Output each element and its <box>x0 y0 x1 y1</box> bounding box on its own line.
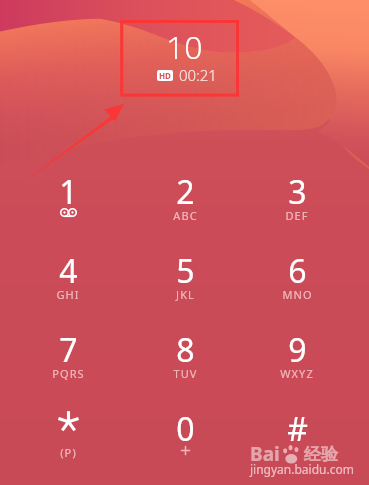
staticText: 10 <box>166 25 203 69</box>
button[interactable]: 4 <box>12 243 124 315</box>
staticText: MNO <box>282 287 313 302</box>
button[interactable]: 0 <box>129 401 241 473</box>
staticText: ABC <box>173 208 198 223</box>
button[interactable]: 1 <box>12 164 124 236</box>
staticText: 3 <box>288 170 307 214</box>
button[interactable]: 9 <box>241 322 353 394</box>
staticText: 7 <box>59 328 78 372</box>
staticText: 00:21 <box>179 65 217 85</box>
staticText: 8 <box>176 328 195 372</box>
staticText: 4 <box>59 249 78 293</box>
staticText: DEF <box>285 208 309 223</box>
button[interactable]: 3 <box>241 164 353 236</box>
staticText: 9 <box>288 328 307 372</box>
button[interactable]: 2 <box>129 164 241 236</box>
button[interactable]: # <box>241 401 353 473</box>
staticText: PQRS <box>52 366 85 381</box>
button[interactable]: 8 <box>129 322 241 394</box>
staticText: Bai <box>250 441 280 467</box>
staticText: # <box>287 407 308 451</box>
staticText: 经验 <box>304 444 338 465</box>
staticText: jingyan.baidu.com <box>250 461 354 477</box>
staticText: HD <box>159 70 171 81</box>
staticText: 0 <box>176 407 195 451</box>
button[interactable]: 6 <box>241 243 353 315</box>
button[interactable]: 7 <box>12 322 124 394</box>
staticText: WXYZ <box>280 366 314 381</box>
staticText: (P) <box>60 445 77 460</box>
staticText: TUV <box>173 366 198 381</box>
staticText: JKL <box>176 287 195 302</box>
staticText: 2 <box>176 170 195 214</box>
staticText: 5 <box>176 249 195 293</box>
staticText: 1 <box>59 170 78 214</box>
button[interactable]: 5 <box>129 243 241 315</box>
button[interactable]: (P) <box>12 401 124 473</box>
staticText: 6 <box>288 249 307 293</box>
staticText: GHI <box>56 287 80 302</box>
